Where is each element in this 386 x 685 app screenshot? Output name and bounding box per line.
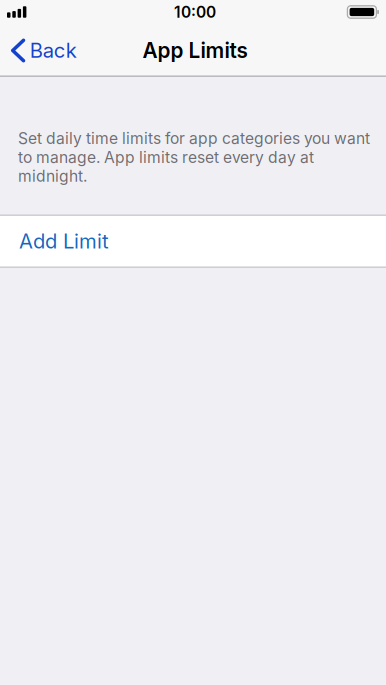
staticText: Add Limit (19, 229, 109, 253)
staticText: App Limits (142, 38, 247, 63)
button[interactable]: Add Limit (0, 215, 386, 268)
button[interactable]: Back (0, 24, 87, 77)
staticText: Set daily time limits for app categories… (18, 129, 370, 186)
staticText: Back (30, 38, 77, 63)
staticText: 10:00 (174, 3, 216, 21)
